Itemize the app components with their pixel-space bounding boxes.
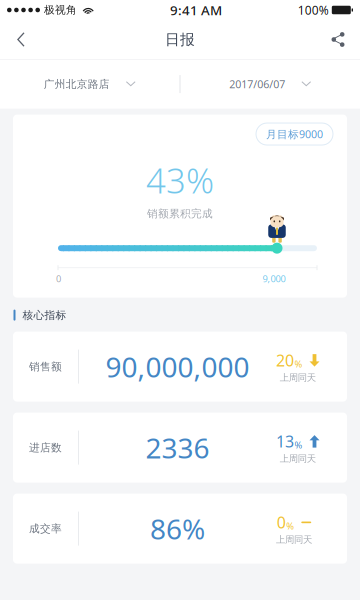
- staticText: 0: [277, 512, 286, 533]
- staticText: 9,000: [262, 272, 285, 285]
- button[interactable]: 广州北京路店: [0, 60, 179, 109]
- button[interactable]: 进店数: [13, 413, 347, 483]
- staticText: 上周同天: [280, 453, 316, 464]
- staticText: 2336: [145, 429, 209, 466]
- staticText: 日报: [165, 30, 195, 48]
- staticText: 0: [56, 272, 61, 285]
- staticText: 极视角: [44, 3, 77, 16]
- staticText: 上周同天: [276, 534, 312, 545]
- staticText: 86%: [150, 510, 205, 547]
- staticText: 广州北京路店: [44, 77, 110, 91]
- staticText: 20: [276, 350, 294, 371]
- button[interactable]: Share: [316, 20, 360, 59]
- staticText: 9:41 AM: [170, 1, 222, 19]
- staticText: 43%: [146, 157, 214, 203]
- staticText: 销额累积完成: [147, 207, 213, 220]
- staticText: 核心指标: [22, 308, 66, 322]
- staticText: %: [286, 520, 294, 532]
- button[interactable]: 成交率: [13, 494, 347, 564]
- staticText: 进店数: [29, 441, 62, 454]
- button[interactable]: Back: [0, 20, 42, 59]
- staticText: 成交率: [29, 522, 62, 535]
- button[interactable]: 销售额: [13, 332, 347, 402]
- staticText: 上周同天: [280, 372, 316, 383]
- staticText: 13: [276, 431, 294, 452]
- staticText: %: [294, 358, 302, 370]
- button[interactable]: 月目标9000: [256, 123, 333, 145]
- staticText: %: [294, 439, 302, 451]
- staticText: 90,000,000: [105, 348, 249, 385]
- staticText: 销售额: [29, 360, 62, 373]
- button[interactable]: 2017/06/07: [180, 60, 360, 109]
- staticText: 月目标9000: [266, 127, 323, 141]
- staticText: 100%: [298, 2, 329, 18]
- staticText: 2017/06/07: [229, 77, 285, 91]
